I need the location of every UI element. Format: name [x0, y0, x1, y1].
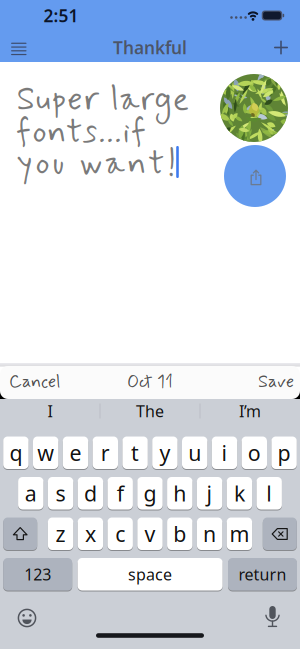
staticText: e — [69, 439, 81, 467]
staticText: o — [248, 439, 261, 467]
staticText: w — [37, 439, 54, 467]
staticText: space — [128, 564, 172, 585]
staticText: s — [56, 479, 66, 507]
staticText: g — [143, 479, 156, 507]
staticText: f — [117, 479, 124, 507]
staticText: c — [115, 520, 125, 548]
staticText: you want! — [17, 142, 176, 186]
staticText: l — [266, 479, 272, 507]
staticText: t — [131, 439, 139, 467]
staticText: 2:51 — [43, 4, 78, 27]
staticText: k — [234, 479, 245, 507]
staticText: The — [136, 400, 164, 422]
staticText: Save — [258, 370, 294, 394]
staticText: h — [173, 479, 186, 507]
staticText: Thankful — [113, 36, 187, 59]
staticText: a — [25, 479, 37, 507]
staticText: p — [278, 439, 291, 467]
staticText: r — [101, 439, 110, 467]
staticText: d — [84, 479, 97, 507]
staticText: j — [207, 479, 213, 507]
staticText: I’m — [239, 400, 261, 422]
staticText: n — [203, 520, 216, 548]
staticText: m — [229, 520, 249, 548]
staticText: i — [221, 439, 227, 467]
staticText: b — [173, 520, 186, 548]
staticText: Super large — [16, 78, 188, 122]
staticText: u — [188, 439, 201, 467]
staticText: q — [9, 439, 22, 467]
staticText: x — [85, 520, 96, 548]
staticText: z — [56, 520, 66, 548]
staticText: 123 — [24, 564, 51, 585]
staticText: Cancel — [9, 370, 60, 394]
staticText: Oct 11 — [127, 370, 173, 394]
staticText: y — [159, 439, 170, 467]
staticText: v — [144, 520, 155, 548]
staticText: return — [238, 564, 286, 585]
staticText: I — [47, 400, 52, 422]
staticText: fonts...if — [16, 111, 145, 154]
